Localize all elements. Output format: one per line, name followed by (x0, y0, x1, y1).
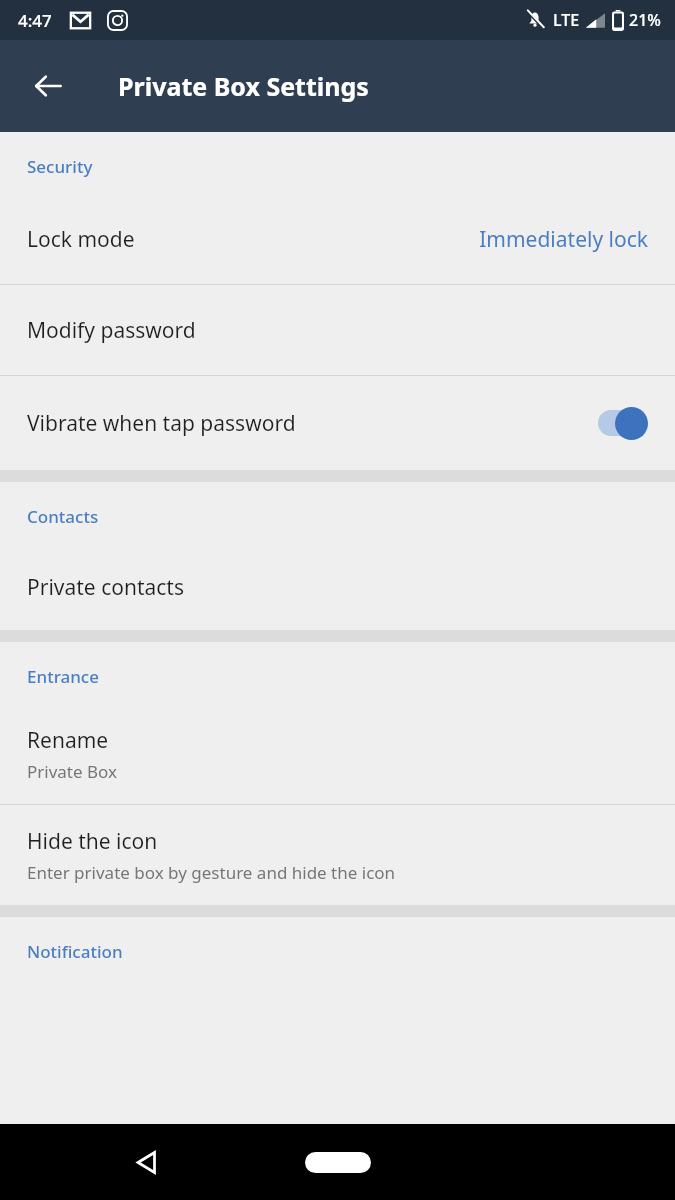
button[interactable]: Rename (0, 704, 675, 804)
staticText: Hide the icon (27, 827, 158, 856)
staticText: Private contacts (27, 573, 184, 602)
staticText: Lock mode (27, 225, 135, 254)
staticText: Vibrate when tap password (27, 409, 296, 438)
staticText: Private Box (27, 760, 117, 783)
staticText: Immediately lock (479, 225, 648, 254)
staticText: 21% (629, 9, 661, 31)
staticText: Entrance (27, 665, 99, 688)
button[interactable]: Lock mode (0, 194, 675, 284)
button[interactable]: Back (118, 1134, 174, 1190)
staticText: Rename (27, 726, 109, 755)
staticText: Private Box Settings (118, 69, 369, 103)
button[interactable]: Hide the icon (0, 805, 675, 905)
staticText: Modify password (27, 316, 196, 345)
staticText: 4:47 (18, 9, 52, 32)
button[interactable]: Vibrate when tap password (0, 376, 675, 470)
staticText: Security (27, 155, 93, 178)
button[interactable]: Modify password (0, 285, 675, 375)
button[interactable]: Back (22, 60, 74, 112)
staticText: Enter private box by gesture and hide th… (27, 861, 396, 884)
staticText: Notification (27, 940, 123, 963)
button[interactable]: Home (305, 1152, 371, 1173)
button[interactable]: Private contacts (0, 544, 675, 630)
staticText: Contacts (27, 505, 99, 528)
staticText: LTE (553, 9, 580, 31)
